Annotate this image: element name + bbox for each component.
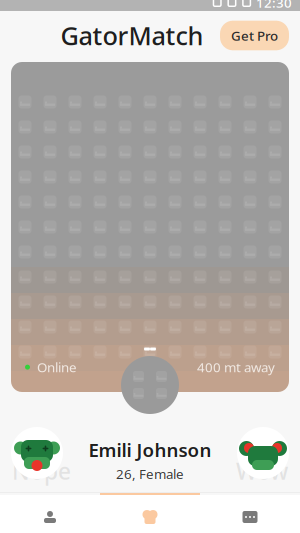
button[interactable]: Profile — [0, 493, 100, 533]
staticText: GatorMatch — [60, 19, 203, 52]
button[interactable]: Get Pro — [220, 21, 289, 50]
staticText: Wow — [236, 456, 288, 486]
staticText: 400 mt away — [197, 358, 275, 376]
staticText: 26, Female — [116, 465, 184, 483]
staticText: Nope — [12, 456, 71, 486]
button[interactable]: Nope — [11, 427, 63, 479]
staticText: Online — [37, 358, 77, 376]
staticText: 12:30 — [256, 0, 292, 11]
staticText: Emili Johnson — [88, 437, 211, 462]
staticText: Get Pro — [231, 27, 278, 44]
button[interactable]: Messages — [200, 493, 300, 533]
button[interactable]: Wow — [237, 427, 289, 479]
button[interactable]: Matches — [100, 493, 200, 533]
